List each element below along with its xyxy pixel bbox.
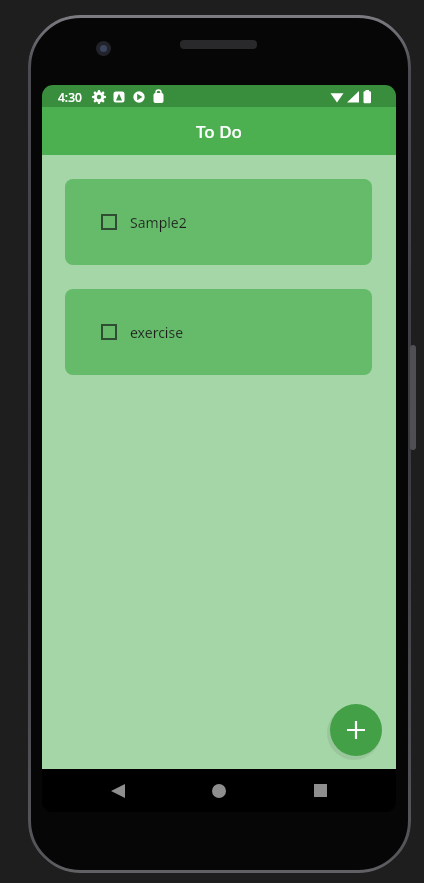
staticText: 4:30 (58, 89, 82, 105)
button[interactable]: exercise (65, 289, 372, 375)
button[interactable] (330, 704, 382, 756)
button[interactable] (101, 324, 117, 340)
button[interactable] (94, 769, 142, 812)
button[interactable] (296, 769, 344, 812)
button[interactable] (195, 769, 243, 812)
staticText: To Do (196, 120, 242, 143)
button[interactable] (101, 214, 117, 230)
staticText: Sample2 (130, 213, 187, 232)
button[interactable]: Sample2 (65, 179, 372, 265)
staticText: exercise (130, 323, 184, 342)
